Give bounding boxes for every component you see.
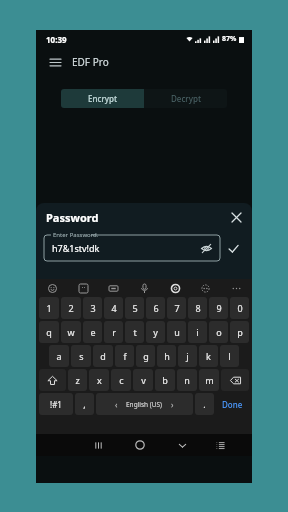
staticText: s xyxy=(79,350,84,362)
button[interactable]: f xyxy=(115,345,134,367)
button[interactable]: 7 xyxy=(167,297,186,319)
button[interactable]: t xyxy=(125,321,144,343)
button[interactable]: 2 xyxy=(61,297,81,319)
staticText: 5 xyxy=(132,302,138,314)
button[interactable]: q xyxy=(39,321,59,343)
button[interactable]: Done xyxy=(216,393,249,415)
button[interactable]: !#1 xyxy=(39,393,73,415)
button[interactable]: j xyxy=(178,345,197,367)
staticText: 7 xyxy=(174,302,180,314)
button[interactable]: Confirm xyxy=(220,231,246,261)
button[interactable]: Translate xyxy=(197,280,213,296)
button[interactable]: Shift xyxy=(39,369,66,391)
staticText: t xyxy=(133,326,137,338)
button[interactable]: v xyxy=(133,369,153,391)
button[interactable]: . xyxy=(195,393,214,415)
staticText: v xyxy=(141,374,146,386)
button[interactable]: Stickers xyxy=(75,280,91,296)
button[interactable]: 0 xyxy=(230,297,249,319)
button[interactable]: m xyxy=(199,369,219,391)
staticText: › xyxy=(171,399,174,410)
button[interactable]: Switch keyboard xyxy=(201,434,239,456)
staticText: Enter Password. xyxy=(53,231,99,239)
staticText: j xyxy=(186,350,189,362)
button[interactable]: Enter Password. xyxy=(44,231,220,261)
staticText: k xyxy=(206,350,211,362)
button[interactable]: Voice input xyxy=(136,280,152,296)
staticText: q xyxy=(46,326,52,338)
button[interactable]: u xyxy=(167,321,186,343)
button[interactable]: s xyxy=(71,345,91,367)
staticText: 3 xyxy=(90,302,96,314)
button[interactable]: 3 xyxy=(83,297,102,319)
staticText: g xyxy=(143,350,149,362)
staticText: 87% xyxy=(222,34,237,44)
button[interactable]: b xyxy=(155,369,175,391)
staticText: Done xyxy=(222,399,243,410)
button[interactable]: d xyxy=(93,345,113,367)
button[interactable]: y xyxy=(146,321,165,343)
staticText: m xyxy=(205,374,214,386)
staticText: f xyxy=(123,350,127,362)
button[interactable]: Close xyxy=(228,209,244,225)
staticText: e xyxy=(90,326,96,338)
staticText: h7&1stv!dk xyxy=(52,242,100,254)
staticText: y xyxy=(153,326,158,338)
button[interactable]: Home xyxy=(117,434,163,456)
staticText: a xyxy=(56,350,62,362)
button[interactable]: x xyxy=(89,369,109,391)
button[interactable]: Recents xyxy=(79,434,117,456)
button[interactable]: r xyxy=(104,321,123,343)
staticText: i xyxy=(196,326,199,338)
staticText: o xyxy=(216,326,222,338)
staticText: p xyxy=(237,326,243,338)
button[interactable]: Backspace xyxy=(221,369,249,391)
button[interactable]: w xyxy=(61,321,81,343)
staticText: . xyxy=(203,398,206,410)
button[interactable]: i xyxy=(188,321,207,343)
button[interactable]: p xyxy=(230,321,249,343)
button[interactable]: l xyxy=(220,345,239,367)
staticText: English (US) xyxy=(126,400,163,409)
button[interactable]: e xyxy=(83,321,102,343)
button[interactable]: More xyxy=(228,280,244,296)
button[interactable]: n xyxy=(177,369,197,391)
button[interactable]: 6 xyxy=(146,297,165,319)
staticText: EDF Pro xyxy=(72,55,109,69)
button[interactable]: 4 xyxy=(104,297,123,319)
staticText: !#1 xyxy=(50,399,62,410)
button[interactable]: a xyxy=(49,345,69,367)
staticText: 10:39 xyxy=(46,34,67,45)
staticText: 6 xyxy=(153,302,159,314)
button[interactable]: Toggle password visibility xyxy=(198,240,214,256)
button[interactable]: 9 xyxy=(209,297,228,319)
button[interactable]: Encrypt xyxy=(61,89,144,108)
button[interactable]: 8 xyxy=(188,297,207,319)
button[interactable]: c xyxy=(111,369,131,391)
button[interactable]: 1 xyxy=(39,297,59,319)
button[interactable]: Settings xyxy=(167,280,183,296)
button[interactable]: Emoji xyxy=(44,280,60,296)
button[interactable]: k xyxy=(199,345,218,367)
staticText: 9 xyxy=(216,302,222,314)
staticText: d xyxy=(100,350,106,362)
button[interactable]: Menu xyxy=(46,53,64,71)
staticText: x xyxy=(97,374,102,386)
button[interactable]: GIF xyxy=(105,280,121,296)
button[interactable]: g xyxy=(136,345,155,367)
button[interactable]: o xyxy=(209,321,228,343)
button[interactable]: 5 xyxy=(125,297,144,319)
staticText: Encrypt xyxy=(88,93,118,104)
button[interactable]: z xyxy=(68,369,87,391)
button[interactable]: , xyxy=(75,393,94,415)
button[interactable]: Hide keyboard xyxy=(163,434,201,456)
staticText: 1 xyxy=(46,302,52,314)
staticText: h xyxy=(164,350,170,362)
staticText: 0 xyxy=(237,302,243,314)
staticText: w xyxy=(67,326,75,338)
staticText: u xyxy=(174,326,180,338)
button[interactable]: h xyxy=(157,345,176,367)
staticText: n xyxy=(184,374,190,386)
button[interactable]: ‹ xyxy=(96,393,193,415)
button[interactable]: Decrypt xyxy=(144,89,227,108)
